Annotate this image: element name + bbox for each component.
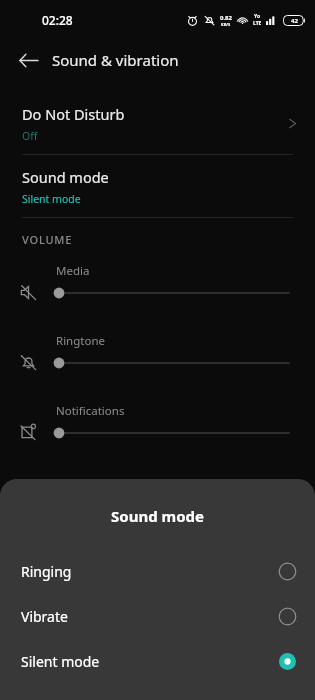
- staticText: 0.82: [220, 14, 232, 22]
- staticText: 02:28: [42, 12, 73, 28]
- staticText: Notifications: [56, 403, 125, 419]
- button[interactable]: Sound mode: [0, 155, 315, 217]
- button[interactable]: Do Not Disturb: [0, 92, 315, 154]
- staticText: VOLUME: [22, 232, 73, 247]
- button[interactable]: Back: [10, 42, 46, 78]
- staticText: Ringing: [21, 562, 72, 581]
- staticText: Media: [56, 263, 90, 279]
- staticText: Sound mode: [22, 167, 109, 187]
- staticText: Silent mode: [22, 192, 81, 206]
- staticText: Yo: [254, 13, 261, 20]
- staticText: LTE: [253, 20, 262, 27]
- staticText: Sound mode: [0, 506, 315, 526]
- button[interactable]: Ringing: [0, 549, 315, 594]
- staticText: Off: [22, 129, 38, 143]
- staticText: Ringtone: [56, 333, 106, 349]
- button[interactable]: Silent mode: [0, 639, 315, 684]
- staticText: KB/S: [221, 22, 231, 27]
- staticText: Silent mode: [21, 652, 100, 671]
- staticText: 42: [291, 17, 298, 25]
- staticText: Sound & vibration: [52, 50, 179, 70]
- button[interactable]: Vibrate: [0, 594, 315, 639]
- staticText: Vibrate: [21, 607, 68, 626]
- staticText: Do Not Disturb: [22, 104, 125, 124]
